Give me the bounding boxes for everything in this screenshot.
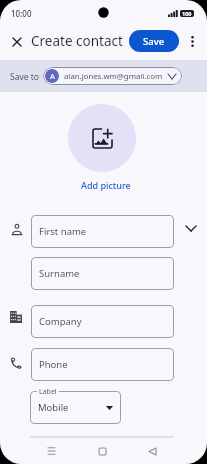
button[interactable]: Company: [31, 305, 174, 338]
staticText: A: [50, 71, 55, 81]
staticText: Phone: [39, 358, 68, 371]
button[interactable]: Home: [92, 441, 112, 461]
button[interactable]: Recent apps: [41, 441, 61, 461]
button[interactable]: Close: [4, 29, 29, 54]
button[interactable]: [30, 391, 121, 424]
staticText: Company: [39, 315, 82, 328]
staticText: 100: [182, 10, 192, 17]
staticText: 10:00: [11, 8, 32, 19]
staticText: Label: [39, 387, 57, 397]
staticText: alan.jones.wm@gmail.com: [64, 71, 163, 82]
button[interactable]: First name: [31, 215, 174, 248]
staticText: Save to: [10, 71, 39, 83]
button[interactable]: Save: [129, 30, 179, 52]
button[interactable]: More options: [180, 29, 204, 53]
staticText: Surname: [39, 267, 80, 280]
button[interactable]: Phone: [31, 348, 174, 381]
staticText: Mobile: [38, 401, 69, 414]
button[interactable]: Add picture: [68, 104, 136, 172]
staticText: Save: [143, 35, 165, 48]
staticText: First name: [39, 225, 87, 238]
button[interactable]: Back: [142, 441, 162, 461]
staticText: Create contact: [31, 32, 123, 50]
button[interactable]: Expand name fields: [178, 216, 203, 240]
button[interactable]: A: [43, 67, 182, 85]
button[interactable]: Surname: [31, 257, 174, 290]
staticText: Add picture: [81, 179, 131, 191]
